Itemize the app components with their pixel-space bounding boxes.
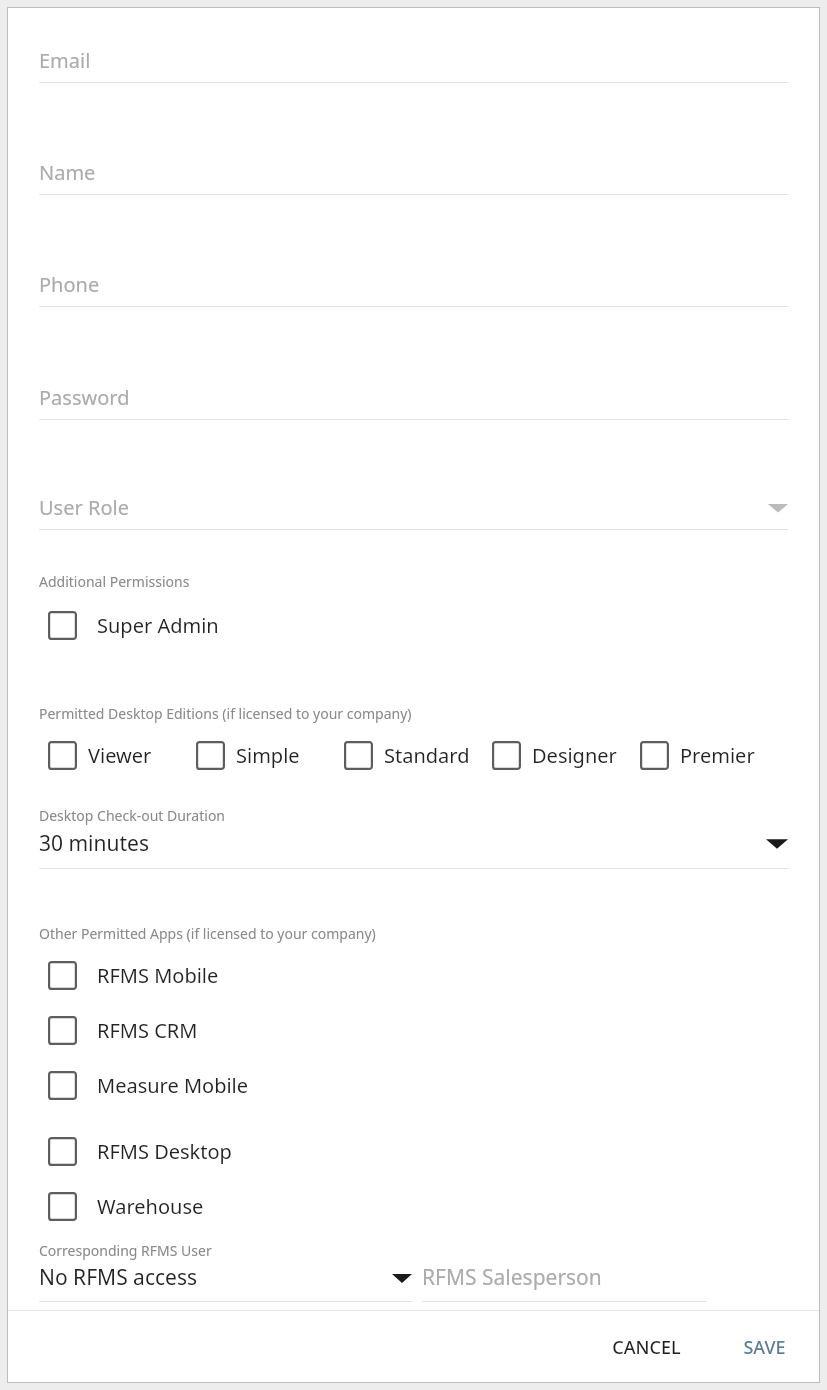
staticText: Simple: [236, 742, 300, 769]
staticText: Name: [39, 159, 788, 186]
button[interactable]: Measure Mobile: [48, 1071, 788, 1100]
staticText: Viewer: [88, 742, 152, 769]
staticText: Email: [39, 47, 788, 74]
staticText: User Role: [39, 494, 768, 521]
staticText: SAVE: [743, 1335, 786, 1360]
staticText: Password: [39, 384, 788, 411]
staticText: Standard: [384, 742, 470, 769]
button[interactable]: Warehouse: [48, 1192, 788, 1221]
button[interactable]: 30 minutes: [39, 829, 788, 869]
button[interactable]: User Role: [39, 494, 788, 530]
staticText: Warehouse: [97, 1193, 204, 1220]
button[interactable]: Super Admin: [48, 611, 788, 640]
staticText: Premier: [680, 742, 755, 769]
button[interactable]: SAVE: [727, 1325, 802, 1370]
staticText: Permitted Desktop Editions (if licensed …: [39, 704, 412, 723]
staticText: 30 minutes: [39, 829, 766, 858]
staticText: Other Permitted Apps (if licensed to you…: [39, 924, 376, 943]
staticText: Additional Permissions: [39, 572, 190, 591]
button[interactable]: Name: [39, 159, 788, 195]
button[interactable]: Password: [39, 384, 788, 420]
staticText: RFMS Mobile: [97, 962, 219, 989]
button[interactable]: Phone: [39, 271, 788, 307]
button[interactable]: Standard: [344, 741, 492, 770]
button[interactable]: RFMS Mobile: [48, 961, 788, 990]
staticText: RFMS Desktop: [97, 1138, 232, 1165]
button[interactable]: Email: [39, 47, 788, 83]
button[interactable]: Designer: [492, 741, 640, 770]
staticText: CANCEL: [612, 1335, 681, 1360]
staticText: RFMS CRM: [97, 1017, 198, 1044]
button[interactable]: RFMS Salesperson: [422, 1263, 788, 1302]
button[interactable]: Premier: [640, 741, 788, 770]
button[interactable]: Viewer: [48, 741, 196, 770]
staticText: No RFMS access: [39, 1263, 392, 1292]
staticText: Corresponding RFMS User: [39, 1241, 212, 1260]
button[interactable]: CANCEL: [596, 1325, 697, 1370]
staticText: Measure Mobile: [97, 1072, 249, 1099]
staticText: Desktop Check-out Duration: [39, 806, 226, 825]
staticText: RFMS Salesperson: [422, 1263, 602, 1292]
staticText: Designer: [532, 742, 617, 769]
button[interactable]: Simple: [196, 741, 344, 770]
button[interactable]: No RFMS access: [39, 1263, 412, 1302]
button[interactable]: RFMS Desktop: [48, 1137, 788, 1166]
staticText: Phone: [39, 271, 788, 298]
staticText: Super Admin: [97, 612, 219, 639]
button[interactable]: RFMS CRM: [48, 1016, 788, 1045]
